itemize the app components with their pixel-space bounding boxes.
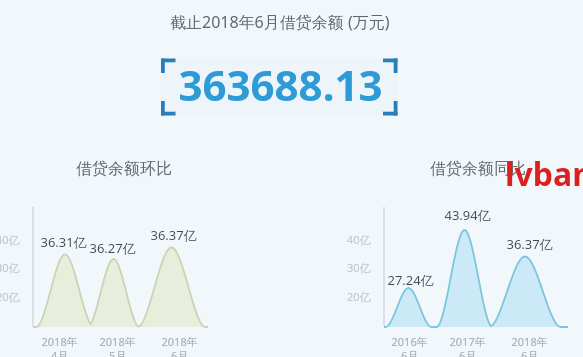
button[interactable] xyxy=(0,0,583,357)
